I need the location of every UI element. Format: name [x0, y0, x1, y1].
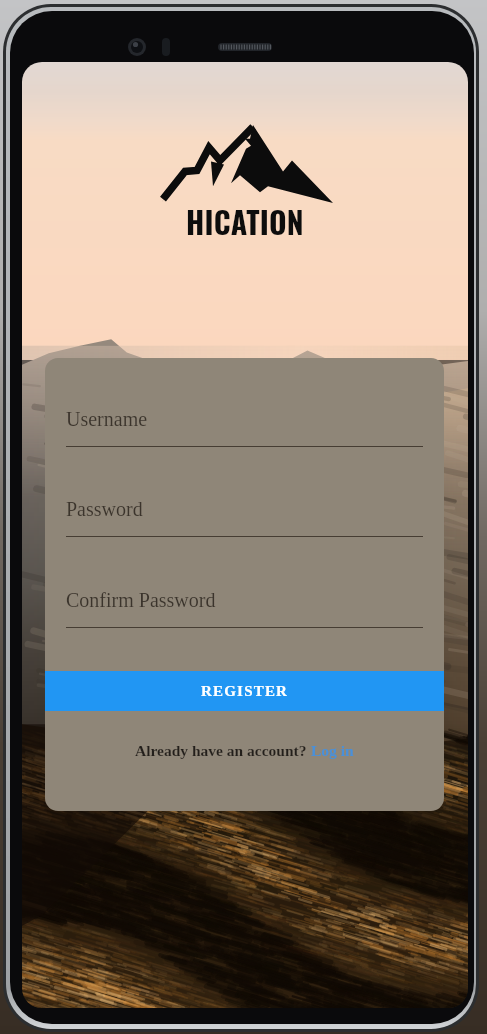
- staticText: Already have an account?: [135, 742, 311, 759]
- staticText: Password: [66, 498, 143, 520]
- button[interactable]: Confirm Password: [66, 589, 423, 628]
- button[interactable]: Password: [66, 498, 423, 537]
- button[interactable]: REGISTER: [45, 671, 444, 711]
- button[interactable]: Username: [66, 408, 423, 447]
- button[interactable]: Log in: [311, 742, 354, 759]
- staticText: HICATION: [186, 199, 304, 243]
- staticText: REGISTER: [201, 683, 289, 700]
- staticText: Confirm Password: [66, 589, 216, 611]
- staticText: Log in: [311, 742, 354, 759]
- staticText: Username: [66, 408, 148, 430]
